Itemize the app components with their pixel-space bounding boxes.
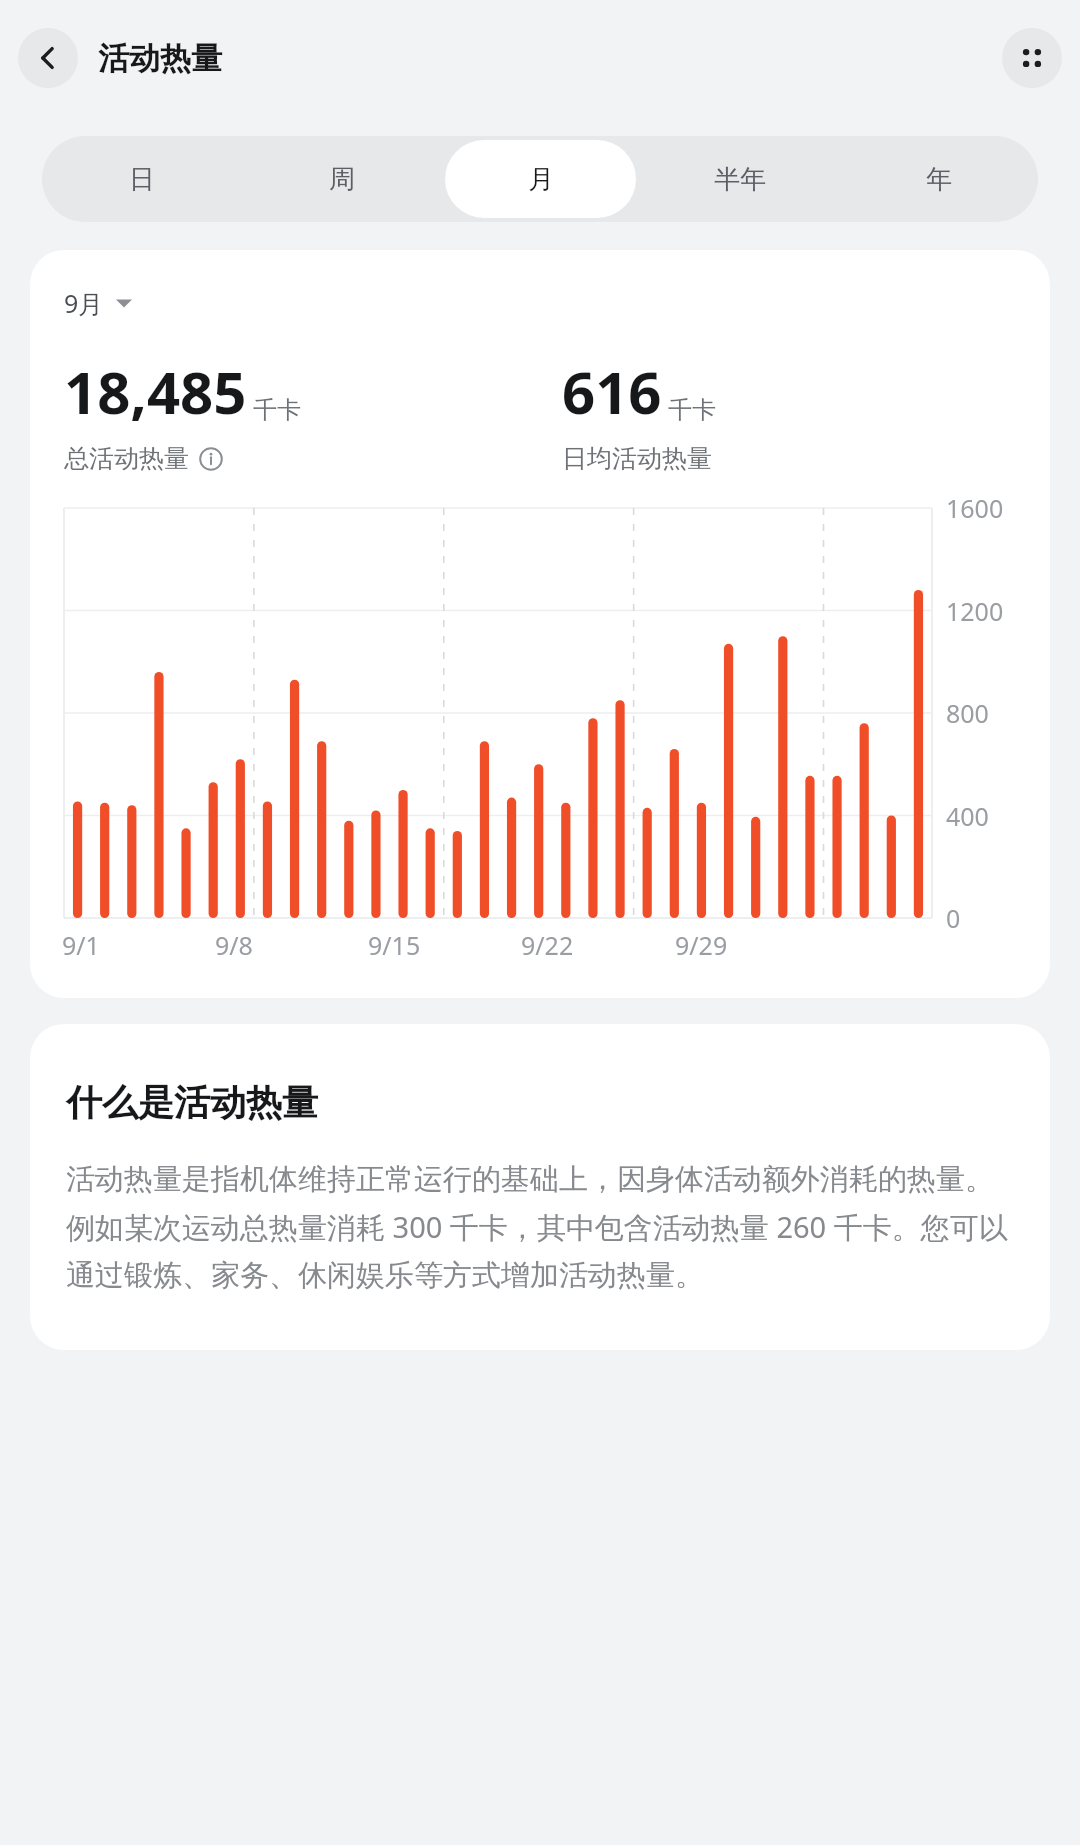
button[interactable]: 月 (445, 140, 636, 218)
staticText: 1200 (946, 594, 1004, 628)
button[interactable]: More options (1002, 28, 1062, 88)
button[interactable]: 9月 (64, 284, 132, 322)
staticText: 9月 (64, 286, 104, 320)
staticText: 千卡 (668, 395, 716, 425)
staticText: 800 (946, 696, 989, 730)
staticText: 0 (946, 901, 961, 935)
button[interactable]: 日 (46, 140, 238, 218)
staticText: 活动热量 (98, 39, 222, 78)
staticText: 9/8 (215, 928, 253, 962)
staticText: 日 (129, 163, 155, 196)
staticText: 9/1 (62, 928, 100, 962)
staticText: 9/22 (521, 928, 574, 962)
staticText: 总活动热量 (64, 443, 189, 474)
button[interactable]: Back (18, 28, 78, 88)
staticText: 千卡 (253, 395, 301, 425)
staticText: 400 (946, 799, 989, 833)
button[interactable]: 年 (843, 140, 1034, 218)
staticText: 半年 (714, 163, 766, 196)
staticText: 9/29 (675, 928, 728, 962)
staticText: 日均活动热量 (562, 443, 712, 474)
staticText: 什么是活动热量 (66, 1080, 318, 1125)
staticText: 年 (926, 163, 952, 196)
button[interactable]: Info (198, 446, 224, 472)
staticText: 18,485 (64, 352, 247, 431)
button[interactable]: 周 (246, 140, 437, 218)
staticText: 月 (528, 163, 554, 196)
staticText: 9/15 (368, 928, 421, 962)
staticText: 周 (329, 163, 355, 196)
staticText: 1600 (946, 491, 1004, 525)
staticText: 616 (562, 352, 662, 431)
button[interactable]: 半年 (644, 140, 835, 218)
staticText: 活动热量是指机体维持正常运行的基础上，因身体活动额外消耗的热量。例如某次运动总热… (66, 1161, 1014, 1294)
